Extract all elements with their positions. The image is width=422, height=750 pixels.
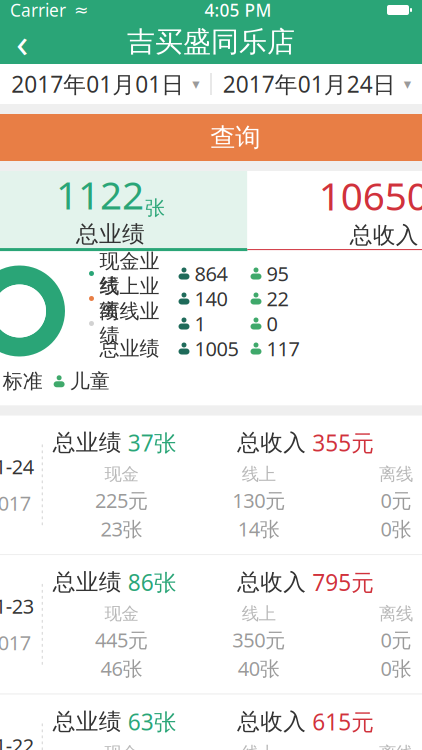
staticText: 0 — [266, 310, 277, 337]
staticText: 离线 — [379, 464, 413, 485]
button[interactable]: 2017年01月24日 — [211, 64, 422, 104]
staticText: 795元 — [312, 567, 374, 597]
staticText: 350元 — [232, 626, 285, 653]
staticText: 355元 — [312, 428, 374, 458]
staticText: 22 — [266, 285, 288, 312]
staticText: 4:05 PM — [204, 0, 271, 21]
staticText: 总收入 — [350, 221, 419, 249]
staticText: 2017 — [0, 629, 31, 656]
staticText: 离线业绩 — [99, 299, 159, 348]
staticText: 0元 — [381, 487, 412, 514]
staticText: 14张 — [238, 515, 280, 542]
staticText: 37张 — [128, 428, 177, 458]
staticText: 23张 — [100, 515, 142, 542]
staticText: 总收入 — [237, 568, 306, 596]
staticText: 86张 — [128, 567, 177, 597]
staticText: 1005 — [194, 335, 238, 362]
staticText: 现金 — [104, 464, 138, 485]
staticText: 864 — [194, 260, 227, 287]
staticText: 总业绩 — [53, 708, 122, 735]
staticText: 线上 — [242, 603, 276, 624]
staticText: 总收入 — [237, 429, 306, 456]
button[interactable]: 1122 — [0, 171, 247, 249]
staticText: 2017年01月01日 — [11, 69, 184, 99]
button[interactable]: 查询 — [0, 114, 422, 161]
staticText: 615元 — [312, 707, 374, 737]
staticText: 0张 — [381, 655, 412, 682]
staticText: 130元 — [232, 487, 285, 514]
staticText: 95 — [266, 260, 288, 287]
button[interactable]: 10650 — [247, 171, 422, 249]
staticText: 0元 — [381, 626, 412, 653]
staticText: 445元 — [95, 626, 148, 653]
button[interactable]: Back — [0, 20, 44, 64]
staticText: ‹ — [16, 15, 28, 68]
staticText: 吉买盛同乐店 — [127, 25, 295, 59]
staticText: 2017 — [0, 490, 31, 516]
staticText: 01-24 — [0, 453, 34, 480]
staticText: 40张 — [238, 655, 280, 682]
staticText: 总业绩 — [99, 336, 159, 361]
staticText: 63张 — [128, 707, 177, 737]
staticText: ▾ — [192, 76, 199, 92]
staticText: 2017年01月24日 — [223, 69, 396, 99]
staticText: 总业绩 — [76, 220, 145, 248]
staticText: 0张 — [381, 515, 412, 542]
staticText: 01-23 — [0, 593, 34, 619]
staticText: ≈ — [74, 0, 89, 20]
staticText: 现金 — [104, 743, 138, 750]
staticText: 离线 — [379, 743, 413, 750]
staticText: 儿童 — [70, 369, 110, 394]
staticText: 标准 — [3, 369, 43, 394]
staticText: 线上业绩 — [99, 274, 159, 323]
button[interactable]: 01-24 — [0, 416, 422, 554]
staticText: 查询 — [210, 122, 260, 153]
staticText: 总业绩 — [53, 568, 122, 596]
staticText: 总业绩 — [53, 429, 122, 456]
staticText: 张 — [145, 196, 165, 220]
button[interactable]: 01-23 — [0, 555, 422, 694]
staticText: 10650 — [319, 170, 422, 221]
button[interactable]: 01-22 — [0, 695, 422, 750]
button[interactable]: 2017年01月01日 — [0, 64, 210, 104]
staticText: 1122 — [56, 169, 144, 220]
staticText: 现金业绩 — [99, 249, 159, 298]
staticText: 225元 — [95, 487, 148, 514]
staticText: 140 — [194, 285, 227, 312]
staticText: 117 — [266, 335, 299, 362]
staticText: 01-22 — [0, 732, 34, 750]
staticText: 总收入 — [237, 708, 306, 735]
staticText: 离线 — [379, 603, 413, 624]
staticText: ▾ — [404, 76, 411, 92]
staticText: 线上 — [242, 464, 276, 485]
staticText: 46张 — [100, 655, 142, 682]
staticText: 现金 — [104, 603, 138, 624]
staticText: 1 — [194, 310, 205, 337]
staticText: 线上 — [242, 743, 276, 750]
staticText: Carrier — [10, 0, 66, 21]
